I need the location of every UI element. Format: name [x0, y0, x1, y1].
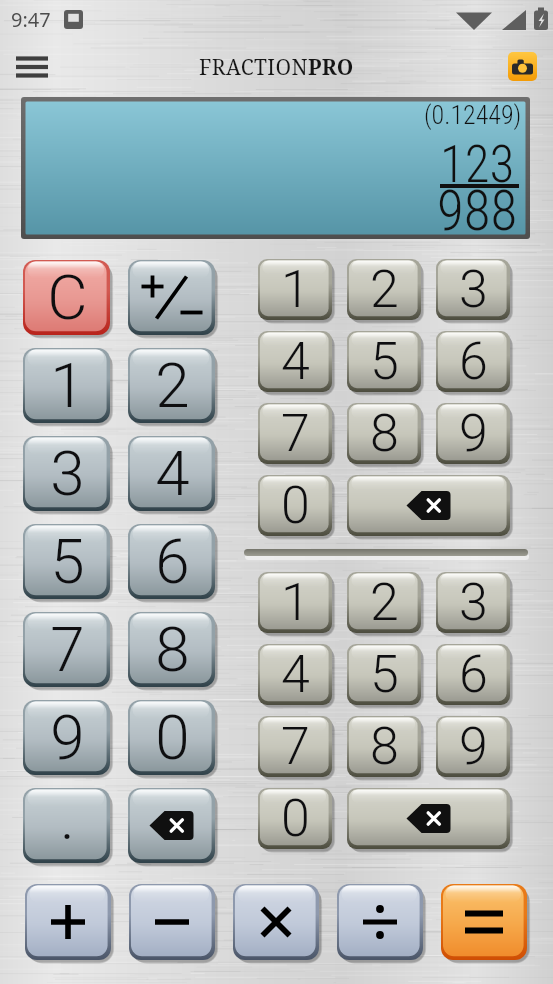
button[interactable]: 8 — [347, 716, 424, 780]
button[interactable]: Minus — [129, 884, 218, 963]
staticText: 2 — [370, 259, 399, 320]
staticText: FRACTION — [199, 53, 308, 82]
staticText: 988 — [437, 179, 518, 243]
staticText: 0 — [155, 701, 190, 774]
button[interactable]: C — [23, 260, 113, 338]
button[interactable]: 3 — [436, 572, 513, 636]
button[interactable]: Menu — [8, 42, 56, 90]
button[interactable]: 5 — [347, 331, 424, 395]
button[interactable]: 7 — [258, 403, 335, 467]
button[interactable]: 9 — [436, 403, 513, 467]
staticText: 2 — [155, 349, 190, 422]
staticText: 3 — [459, 259, 488, 320]
staticText: PRO — [308, 53, 354, 82]
button[interactable]: 0 — [128, 700, 218, 778]
staticText: 2 — [370, 572, 399, 633]
button[interactable]: 3 — [436, 259, 513, 323]
button[interactable]: 1 — [258, 572, 335, 636]
button[interactable]: Camera — [508, 52, 537, 81]
staticText: 3 — [459, 572, 488, 633]
button[interactable]: 6 — [128, 524, 218, 602]
button[interactable]: 9 — [23, 700, 113, 778]
button[interactable]: Backspace — [347, 475, 513, 539]
button[interactable]: 8 — [128, 612, 218, 690]
staticText: 7 — [50, 613, 85, 686]
button[interactable]: Plus minus — [128, 260, 218, 338]
staticText: 4 — [281, 331, 310, 392]
staticText: 4 — [281, 644, 310, 705]
button[interactable]: 7 — [258, 716, 335, 780]
staticText: 8 — [370, 403, 399, 464]
button[interactable]: Backspace — [128, 788, 218, 866]
staticText: 9 — [459, 403, 488, 464]
staticText: 5 — [370, 644, 399, 705]
staticText: 5 — [370, 331, 399, 392]
staticText: 9 — [459, 716, 488, 777]
button[interactable]: 2 — [347, 572, 424, 636]
staticText: 0 — [281, 475, 310, 536]
staticText: 1 — [281, 572, 310, 633]
staticText: 9:47 — [11, 6, 51, 33]
button[interactable]: 9 — [436, 716, 513, 780]
button[interactable]: 8 — [347, 403, 424, 467]
staticText: 7 — [281, 716, 310, 777]
staticText: (0.12449) — [424, 100, 522, 130]
button[interactable]: 1 — [258, 259, 335, 323]
staticText: . — [60, 781, 75, 854]
staticText: 8 — [155, 613, 190, 686]
staticText: 8 — [370, 716, 399, 777]
staticText: 6 — [459, 331, 488, 392]
staticText: 5 — [50, 525, 85, 598]
button[interactable]: 4 — [258, 644, 335, 708]
button[interactable]: Multiply — [233, 884, 322, 963]
button[interactable]: 5 — [23, 524, 113, 602]
button[interactable]: Plus — [25, 884, 114, 963]
button[interactable]: 4 — [128, 436, 218, 514]
button[interactable]: 3 — [23, 436, 113, 514]
button[interactable]: 4 — [258, 331, 335, 395]
staticText: 9 — [50, 701, 85, 774]
staticText: 1 — [50, 349, 85, 422]
staticText: 123 — [440, 135, 515, 195]
staticText: 6 — [459, 644, 488, 705]
button[interactable]: 6 — [436, 644, 513, 708]
staticText: 3 — [50, 437, 85, 510]
staticText: 1 — [281, 259, 310, 320]
staticText: 4 — [155, 437, 190, 510]
button[interactable]: Divide — [337, 884, 426, 963]
button[interactable]: . — [23, 788, 113, 866]
button[interactable]: 0 — [258, 475, 335, 539]
staticText: C — [47, 261, 88, 334]
button[interactable]: 2 — [128, 348, 218, 426]
button[interactable]: 5 — [347, 644, 424, 708]
button[interactable]: 0 — [258, 788, 335, 852]
staticText: 6 — [155, 525, 190, 598]
button[interactable]: 7 — [23, 612, 113, 690]
staticText: 0 — [281, 788, 310, 849]
button[interactable]: 6 — [436, 331, 513, 395]
staticText: 7 — [281, 403, 310, 464]
button[interactable]: 1 — [23, 348, 113, 426]
button[interactable]: Backspace — [347, 788, 513, 852]
button[interactable]: 2 — [347, 259, 424, 323]
button[interactable]: Equals — [441, 884, 530, 963]
